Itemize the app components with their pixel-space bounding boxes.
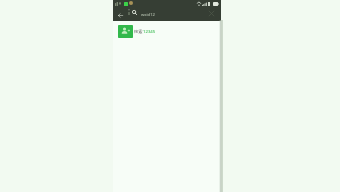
staticText: 搜索: [134, 29, 143, 34]
staticText: 12345: [143, 28, 156, 34]
button[interactable]: Back: [115, 10, 125, 20]
button[interactable]: 搜索: [113, 21, 221, 41]
button[interactable]: Clear search: [206, 8, 217, 19]
staticText: wxid12: [141, 12, 155, 18]
